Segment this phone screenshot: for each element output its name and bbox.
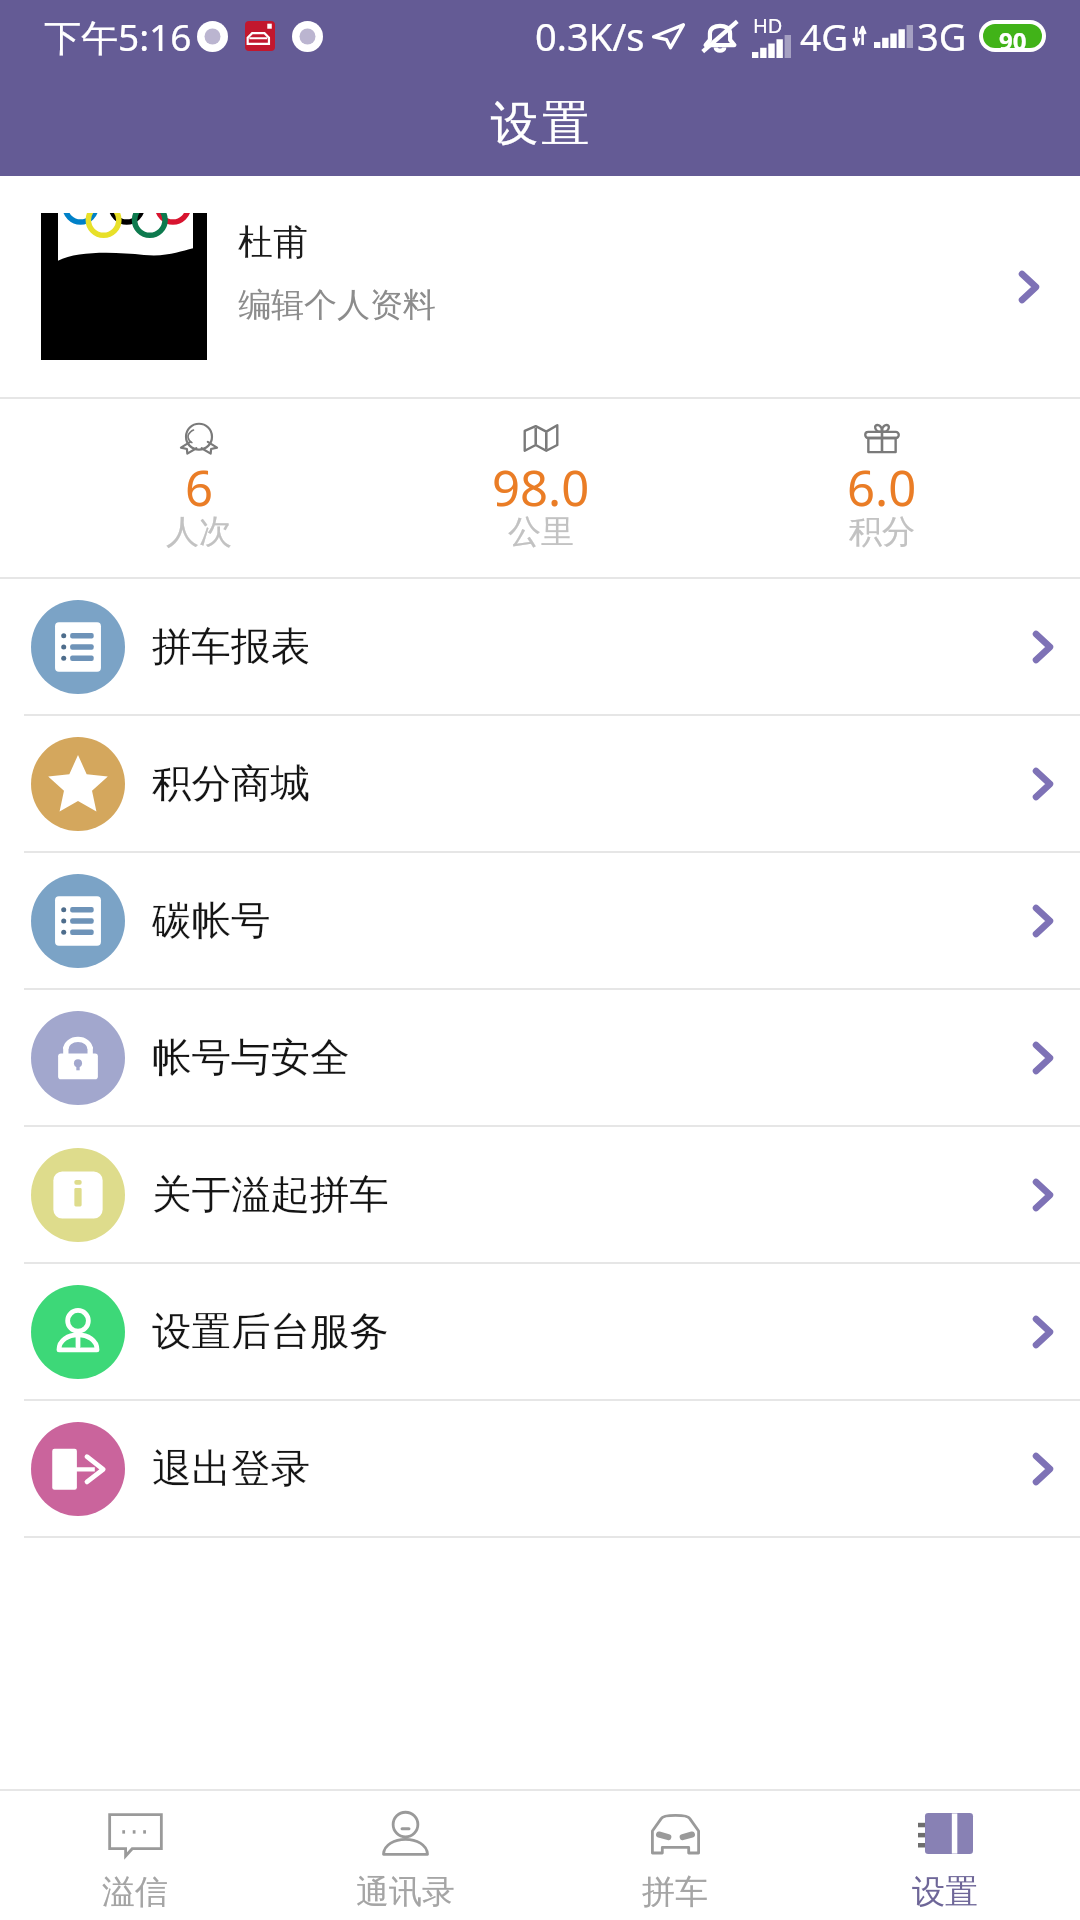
staticText: 4G [800, 11, 849, 61]
staticText: 退出登录 [152, 1444, 310, 1494]
staticText: 90 [999, 24, 1027, 48]
staticText: 公里 [508, 511, 574, 553]
button[interactable]: 设置 [810, 1791, 1080, 1920]
staticText: 积分 [849, 511, 915, 553]
button[interactable]: 拼车报表 [0, 579, 1080, 714]
staticText: 6 [185, 454, 214, 507]
other: Open [1033, 1453, 1053, 1485]
other: Points [860, 422, 904, 454]
staticText: 积分商城 [152, 759, 310, 809]
staticText: 设置 [489, 94, 591, 154]
staticText: 0.3K/s [535, 10, 645, 62]
staticText: 拼车 [642, 1871, 708, 1913]
staticText: 拼车报表 [152, 622, 310, 672]
staticText: 编辑个人资料 [238, 284, 436, 326]
staticText: 6.0 [847, 454, 917, 507]
staticText: 设置 [912, 1871, 978, 1913]
staticText: 溢信 [102, 1871, 168, 1913]
other: Open [1033, 768, 1053, 800]
staticText: 98.0 [492, 454, 590, 507]
button[interactable]: 帐号与安全 [0, 990, 1080, 1125]
button[interactable]: 拼车 [540, 1791, 810, 1920]
staticText: 设置后台服务 [152, 1307, 389, 1357]
button[interactable]: 关于溢起拼车 [0, 1127, 1080, 1262]
button[interactable]: 退出登录 [0, 1401, 1080, 1536]
button[interactable]: Points [711, 399, 1052, 577]
staticText: 关于溢起拼车 [152, 1170, 389, 1220]
staticText: 帐号与安全 [152, 1033, 350, 1083]
other: Open [1033, 1316, 1053, 1348]
staticText: HD [753, 12, 783, 39]
staticText: 下午5:16 [44, 11, 192, 62]
other: Kilometres [519, 422, 563, 454]
button[interactable]: Kilometres [370, 399, 711, 577]
button[interactable]: 设置后台服务 [0, 1264, 1080, 1399]
button[interactable]: 积分商城 [0, 716, 1080, 851]
staticText: 人次 [166, 511, 232, 553]
other: Open [1033, 1042, 1053, 1074]
staticText: 3G [917, 10, 967, 62]
other: Trips [177, 422, 221, 454]
staticText: 杜甫 [238, 220, 308, 264]
other: Open [1019, 271, 1039, 303]
other: Open [1033, 905, 1053, 937]
other: Open [1033, 1179, 1053, 1211]
staticText: 碳帐号 [152, 896, 271, 946]
other: Open [1033, 631, 1053, 663]
button[interactable]: 碳帐号 [0, 853, 1080, 988]
button[interactable]: 杜甫 [0, 176, 1080, 397]
button[interactable]: 通讯录 [270, 1791, 540, 1920]
button[interactable]: 溢信 [0, 1791, 270, 1920]
staticText: 通讯录 [356, 1871, 455, 1913]
button[interactable]: Trips [28, 399, 370, 577]
